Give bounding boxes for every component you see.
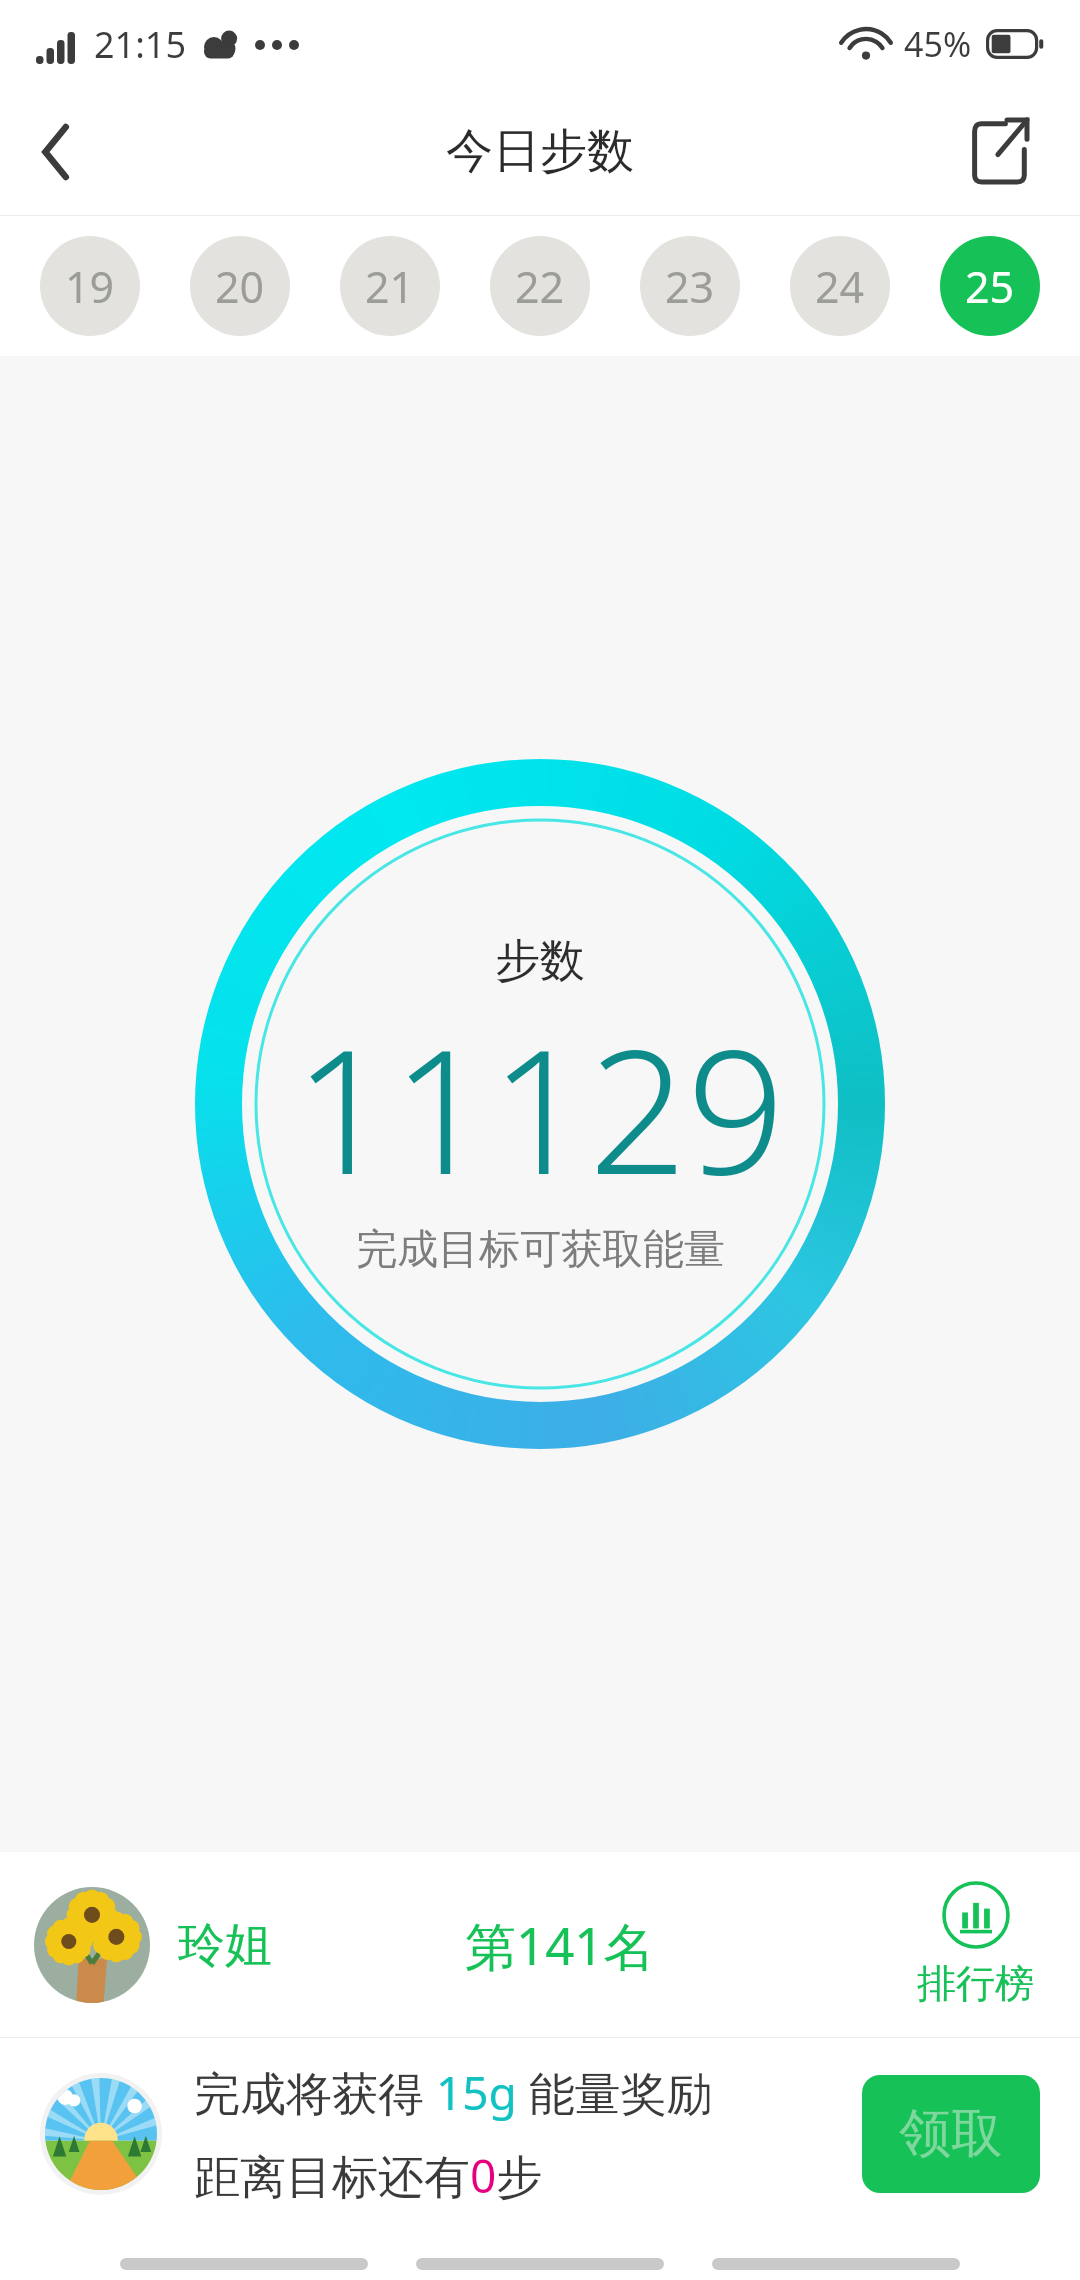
- staticText: 排行榜: [917, 1959, 1034, 2008]
- staticText: 完成目标可获取能量: [356, 1224, 725, 1276]
- staticText: 今日步数: [446, 122, 634, 181]
- staticText: 第141名: [465, 1910, 655, 1980]
- staticText: 24: [815, 257, 865, 316]
- button[interactable]: Share: [952, 104, 1048, 200]
- staticText: 完成将获得 15g 能量奖励: [194, 2061, 713, 2124]
- staticText: 25: [965, 257, 1015, 316]
- staticText: 21: [365, 257, 415, 316]
- staticText: 21:15: [94, 20, 187, 69]
- staticText: 玲姐: [178, 1916, 272, 1975]
- button[interactable]: 25: [940, 236, 1040, 336]
- button[interactable]: 21: [340, 236, 440, 336]
- button[interactable]: Back: [0, 96, 112, 208]
- button[interactable]: 23: [640, 236, 740, 336]
- button[interactable]: 领取: [862, 2075, 1040, 2193]
- button[interactable]: 19: [40, 236, 140, 336]
- staticText: 23: [665, 257, 715, 316]
- staticText: 45%: [904, 21, 972, 67]
- staticText: 11129: [294, 990, 786, 1224]
- staticText: 22: [515, 257, 565, 316]
- button[interactable]: 20: [190, 236, 290, 336]
- staticText: 20: [215, 257, 265, 316]
- button[interactable]: 排行榜: [917, 1881, 1034, 2008]
- button[interactable]: 玲姐: [34, 1887, 272, 2003]
- button[interactable]: 24: [790, 236, 890, 336]
- staticText: 领取: [899, 2101, 1003, 2167]
- staticText: 19: [65, 257, 115, 316]
- staticText: 步数: [495, 933, 585, 990]
- staticText: 距离目标还有0步: [194, 2144, 543, 2207]
- button[interactable]: 22: [490, 236, 590, 336]
